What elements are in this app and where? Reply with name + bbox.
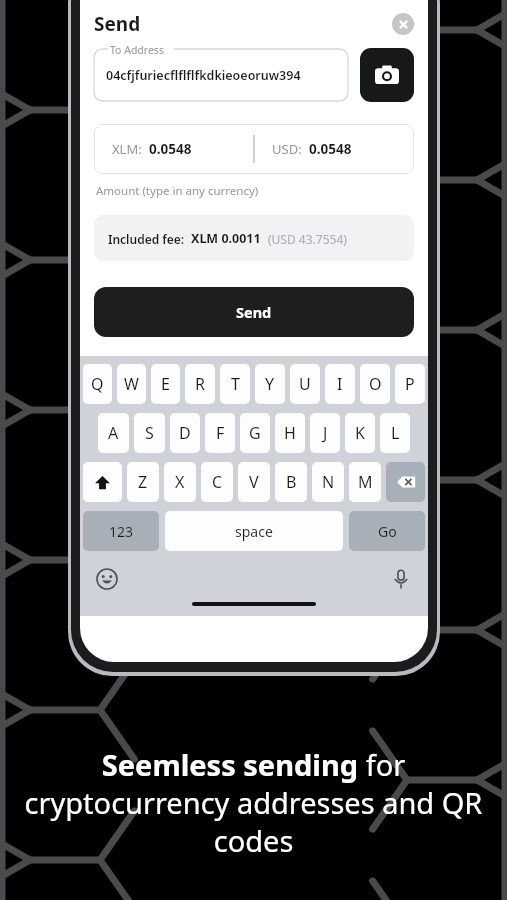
button[interactable]: Shift bbox=[83, 462, 122, 502]
button[interactable]: U bbox=[290, 364, 320, 404]
button[interactable]: F bbox=[205, 413, 235, 453]
staticText: 123 bbox=[109, 522, 134, 541]
button[interactable]: T bbox=[220, 364, 250, 404]
staticText: U bbox=[299, 373, 311, 395]
staticText: Go bbox=[378, 522, 397, 541]
staticText: W bbox=[124, 373, 139, 395]
staticText: F bbox=[216, 422, 225, 444]
staticText: B bbox=[286, 471, 297, 493]
button[interactable]: W bbox=[117, 364, 146, 404]
button[interactable]: To Address bbox=[94, 49, 348, 101]
staticText: Y bbox=[265, 373, 275, 395]
staticText: L bbox=[391, 422, 400, 444]
button[interactable]: V bbox=[238, 462, 270, 502]
staticText: K bbox=[355, 422, 365, 444]
button[interactable]: P bbox=[395, 364, 425, 404]
button[interactable]: E bbox=[151, 364, 180, 404]
button[interactable]: B bbox=[275, 462, 307, 502]
button[interactable]: Go bbox=[349, 511, 425, 551]
staticText: J bbox=[323, 422, 328, 444]
staticText: T bbox=[231, 373, 240, 395]
staticText: 0.0548 bbox=[149, 140, 192, 158]
staticText: Q bbox=[91, 373, 104, 395]
staticText: Z bbox=[138, 471, 148, 493]
staticText: (USD 43.7554) bbox=[268, 231, 347, 247]
staticText: V bbox=[249, 471, 259, 493]
staticText: Send bbox=[236, 302, 272, 322]
button[interactable]: O bbox=[360, 364, 390, 404]
button[interactable]: Q bbox=[83, 364, 112, 404]
staticText: A bbox=[108, 422, 119, 444]
button[interactable]: Dictate bbox=[390, 568, 412, 590]
button[interactable]: Emoji bbox=[96, 568, 118, 590]
staticText: USD: bbox=[272, 140, 302, 158]
button[interactable]: C bbox=[201, 462, 233, 502]
button[interactable]: N bbox=[312, 462, 344, 502]
button[interactable]: Backspace bbox=[386, 462, 425, 502]
staticText: S bbox=[145, 422, 154, 444]
staticText: 0.0548 bbox=[309, 140, 352, 158]
staticText: M bbox=[358, 471, 373, 493]
button[interactable]: H bbox=[275, 413, 305, 453]
button[interactable]: K bbox=[345, 413, 375, 453]
staticText: 04cfjfuriecflflflfkdkieoeoruw394 bbox=[106, 67, 301, 84]
staticText: I bbox=[337, 373, 343, 395]
staticText: Send bbox=[94, 11, 141, 37]
button[interactable]: G bbox=[240, 413, 270, 453]
button[interactable]: J bbox=[310, 413, 340, 453]
staticText: Seemless sending for cryptocurrency addr… bbox=[14, 745, 493, 860]
button[interactable]: D bbox=[170, 413, 200, 453]
button[interactable]: S bbox=[134, 413, 165, 453]
staticText: XLM 0.0011 bbox=[191, 230, 261, 247]
staticText: space bbox=[235, 522, 273, 541]
button[interactable]: L bbox=[380, 413, 410, 453]
button[interactable]: X bbox=[164, 462, 196, 502]
staticText: E bbox=[161, 373, 170, 395]
button[interactable]: Scan QR code bbox=[360, 48, 414, 102]
staticText: To Address bbox=[110, 43, 164, 57]
staticText: N bbox=[322, 471, 335, 493]
staticText: G bbox=[249, 422, 261, 444]
staticText: Amount (type in any currency) bbox=[96, 183, 259, 199]
button[interactable]: M bbox=[349, 462, 381, 502]
staticText: R bbox=[195, 373, 205, 395]
button[interactable]: XLM: bbox=[94, 124, 414, 174]
button[interactable]: Y bbox=[255, 364, 285, 404]
staticText: XLM: bbox=[112, 140, 142, 158]
staticText: Included fee: bbox=[108, 231, 185, 247]
staticText: O bbox=[369, 373, 382, 395]
button[interactable]: Z bbox=[127, 462, 159, 502]
button[interactable]: I bbox=[325, 364, 355, 404]
staticText: H bbox=[284, 422, 296, 444]
staticText: X bbox=[175, 471, 185, 493]
button[interactable]: 123 bbox=[83, 511, 159, 551]
button[interactable]: R bbox=[185, 364, 215, 404]
staticText: D bbox=[179, 422, 191, 444]
button[interactable]: Close bbox=[392, 13, 414, 35]
button[interactable]: A bbox=[98, 413, 129, 453]
button[interactable]: space bbox=[165, 511, 343, 551]
staticText: C bbox=[212, 471, 223, 493]
staticText: P bbox=[405, 373, 415, 395]
button[interactable]: Send bbox=[94, 287, 414, 337]
